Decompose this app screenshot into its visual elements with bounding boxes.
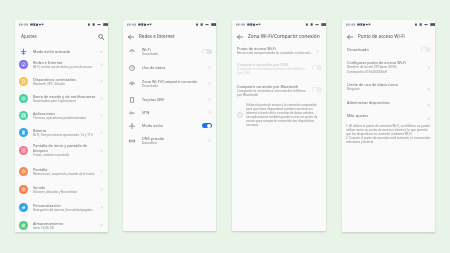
staticText: 1. Al utilizar el punto de conexión Wi-F… [346, 124, 432, 144]
staticText: Batería [33, 128, 46, 133]
button[interactable]: Punto de acceso Wi-Fi [232, 46, 326, 55]
staticText: Wi-Fi [142, 47, 151, 52]
staticText: Administrar dispositivos [347, 100, 390, 105]
button[interactable]: Redes e Internet [15, 56, 108, 72]
staticText: Navegación del sistema, Encendido/apagad… [33, 208, 95, 212]
staticText: Bluetooth, NFC, difusión [33, 82, 65, 86]
staticText: Compartir conexión por USB [237, 62, 288, 67]
staticText: Límite de uso de datos único [347, 82, 399, 87]
staticText: Redes e Internet [33, 60, 63, 65]
staticText: Almacenamiento [33, 221, 64, 226]
button[interactable]: Más ajustes [342, 113, 435, 118]
button[interactable]: Barra de estado y de notificaciones [15, 90, 108, 106]
button[interactable]: Tarjetas SIM [123, 92, 216, 107]
staticText: Modo avión activado [33, 49, 71, 54]
staticText: Tarjetas SIM [142, 97, 164, 102]
staticText: 86 %, Tiempo restante aproximado: 1 d y … [33, 133, 93, 137]
staticText: Utiliza el punto de acceso y la conexión… [246, 103, 319, 127]
staticText: Automático [142, 141, 158, 145]
button[interactable]: Pantalla [15, 163, 108, 179]
staticText: Más ajustes [347, 113, 368, 118]
staticText: Comparte la conexión a internet del telé… [237, 67, 310, 75]
staticText: Aplicaciones [33, 111, 56, 116]
button[interactable]: Search [96, 32, 105, 41]
staticText: Wi-Fi, control uso de datos y punto de a… [33, 65, 93, 69]
staticText: Pantalla de inicio y pantalla de bloqueo [33, 143, 97, 153]
staticText: Compartir conexión por Bluetooth [237, 84, 299, 89]
button[interactable]: Configurar punto de acceso Wi-Fi [342, 60, 435, 74]
button[interactable]: Toggle [202, 49, 212, 54]
staticText: Dispositivos conectados [33, 77, 76, 82]
staticText: Ninguno [347, 87, 360, 91]
staticText: Desactivado [142, 52, 159, 56]
staticText: Configurar punto de acceso Wi-Fi [347, 60, 407, 65]
staticText: Redes e Internet [139, 33, 175, 39]
staticText: Uso de datos [142, 65, 166, 70]
button[interactable]: Back [126, 32, 135, 41]
staticText: Barra de estado y de notificaciones [33, 94, 96, 99]
staticText: Personalización [33, 203, 61, 208]
button[interactable]: Administrar dispositivos [342, 100, 435, 105]
staticText: Desactivado [142, 84, 159, 88]
button[interactable]: Back [235, 32, 244, 41]
button[interactable]: Compartir conexión por USB [232, 62, 326, 75]
button[interactable]: Toggle [312, 87, 322, 92]
button[interactable]: DNS privado [123, 133, 216, 148]
staticText: Temas, cambiar en pantalla [33, 153, 69, 157]
button[interactable]: Modo avión activado [15, 45, 108, 57]
staticText: Punto de acceso Wi-Fi [237, 46, 276, 51]
staticText: Volumen, vibración y No molestar [33, 190, 78, 194]
staticText: Ajustes [21, 33, 37, 39]
button[interactable]: Límite de uso de datos único [342, 82, 435, 91]
button[interactable]: Back [345, 32, 354, 41]
button[interactable]: Dispositivos conectados [15, 73, 108, 89]
staticText: Nombre de la red: ZTE Axon 20 5G Contras… [347, 65, 397, 74]
button[interactable]: Modo avión [123, 118, 216, 133]
button[interactable]: Compartir conexión por Bluetooth [232, 84, 326, 97]
staticText: Sonido [33, 185, 46, 190]
staticText: Modo avión [142, 123, 164, 128]
staticText: Punto de acceso Wi-Fi [358, 33, 405, 39]
button[interactable]: Almacenamiento [15, 217, 108, 232]
staticText: Desactivado [347, 47, 369, 52]
button[interactable]: Aplicaciones [15, 107, 108, 123]
staticText: Zona Wi-Fi/Compartir conexión [142, 79, 198, 84]
button[interactable]: Pantalla de inicio y pantalla de bloqueo [15, 142, 108, 158]
staticText: Pantalla [33, 167, 48, 172]
button[interactable]: Zona Wi-Fi/Compartir conexión [123, 76, 216, 91]
button[interactable]: Toggle [312, 65, 322, 70]
button[interactable]: VPN [123, 105, 216, 120]
button[interactable]: Desactivado [342, 44, 435, 55]
button[interactable]: Sonido [15, 181, 108, 197]
button[interactable]: Toggle [421, 47, 431, 52]
button[interactable]: Batería [15, 124, 108, 140]
staticText: Compartir la conexión a internet del tel… [237, 89, 310, 97]
staticText: Libre: 10,4% GB [33, 226, 54, 230]
staticText: Desactivadas para 3 aplicaciones [33, 99, 77, 103]
staticText: Zona Wi-Fi/Compartir conexión [248, 33, 320, 40]
staticText: Permisos, aplicaciones predeterminadas [33, 116, 87, 120]
button[interactable]: Uso de datos [123, 60, 216, 75]
staticText: VPN [142, 110, 150, 115]
staticText: Modo oscuro, suspensión, tamaño de la fu… [33, 172, 95, 176]
staticText: No se está compartiendo tu conexión a in… [237, 51, 313, 55]
button[interactable]: Toggle [202, 123, 212, 128]
button[interactable]: Personalización [15, 199, 108, 215]
button[interactable]: Wi-Fi [123, 44, 216, 59]
staticText: DNS privado [142, 136, 165, 141]
